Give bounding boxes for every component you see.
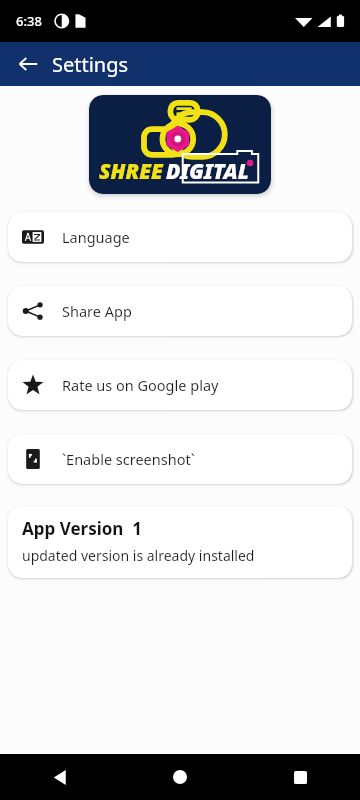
button[interactable]: Language — [8, 212, 352, 262]
staticText: Rate us on Google play — [62, 375, 219, 395]
staticText: DIGITAL — [166, 157, 249, 186]
staticText: Share App — [62, 301, 132, 321]
staticText: Settings — [52, 51, 129, 78]
staticText: App Version 1 — [22, 517, 142, 540]
button[interactable]: Home — [120, 754, 240, 800]
button[interactable]: Shree Digital logo — [89, 95, 271, 194]
button[interactable]: App Version 1 — [8, 506, 352, 578]
button[interactable]: Back — [0, 754, 120, 800]
staticText: SHREE — [99, 157, 163, 186]
staticText: updated version is already installed — [22, 546, 255, 565]
button[interactable]: `Enable screenshot` — [8, 434, 352, 484]
staticText: Language — [62, 227, 130, 247]
staticText: 6:38 — [16, 12, 42, 30]
button[interactable]: Share App — [8, 286, 352, 336]
button[interactable]: Recent apps — [240, 754, 360, 800]
staticText: `Enable screenshot` — [62, 449, 195, 469]
button[interactable]: Rate us on Google play — [8, 360, 352, 410]
button[interactable]: Back — [8, 44, 48, 84]
